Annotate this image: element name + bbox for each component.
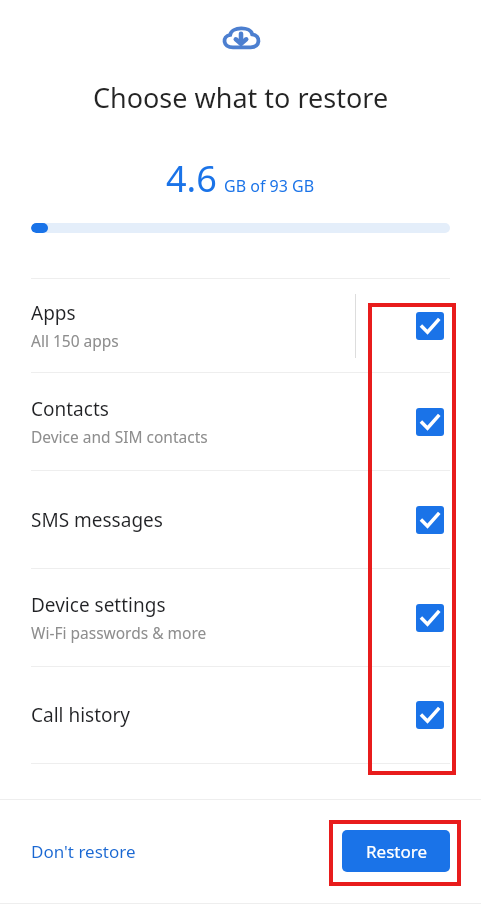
button[interactable]: Restore	[342, 830, 450, 872]
button[interactable]: SMS messages	[0, 471, 481, 568]
button[interactable]: Selected, toggle restore item	[416, 506, 444, 534]
staticText: Device and SIM contacts	[31, 426, 208, 447]
staticText: SMS messages	[31, 507, 163, 533]
staticText: All 150 apps	[31, 330, 119, 351]
staticText: Don't restore	[31, 840, 136, 863]
staticText: Call history	[31, 702, 131, 728]
button[interactable]: Don't restore	[31, 840, 136, 863]
staticText: GB of 93 GB	[224, 175, 315, 197]
button[interactable]: Selected, toggle restore item	[416, 408, 444, 436]
button[interactable]: Selected, toggle restore item	[416, 312, 444, 340]
button[interactable]: Selected, toggle restore item	[416, 604, 444, 632]
staticText: Wi-Fi passwords & more	[31, 622, 207, 643]
button[interactable]: Device settings	[0, 569, 481, 666]
button[interactable]: Contacts	[0, 373, 481, 470]
button[interactable]: Call history	[0, 667, 481, 763]
staticText: Device settings	[31, 592, 166, 618]
staticText: Choose what to restore	[0, 79, 481, 116]
staticText: Restore	[366, 840, 427, 863]
staticText: 4.6	[166, 154, 217, 203]
staticText: Apps	[31, 300, 76, 326]
staticText: Contacts	[31, 396, 109, 422]
button[interactable]: Apps	[0, 279, 481, 372]
button[interactable]: Selected, toggle restore item	[416, 701, 444, 729]
